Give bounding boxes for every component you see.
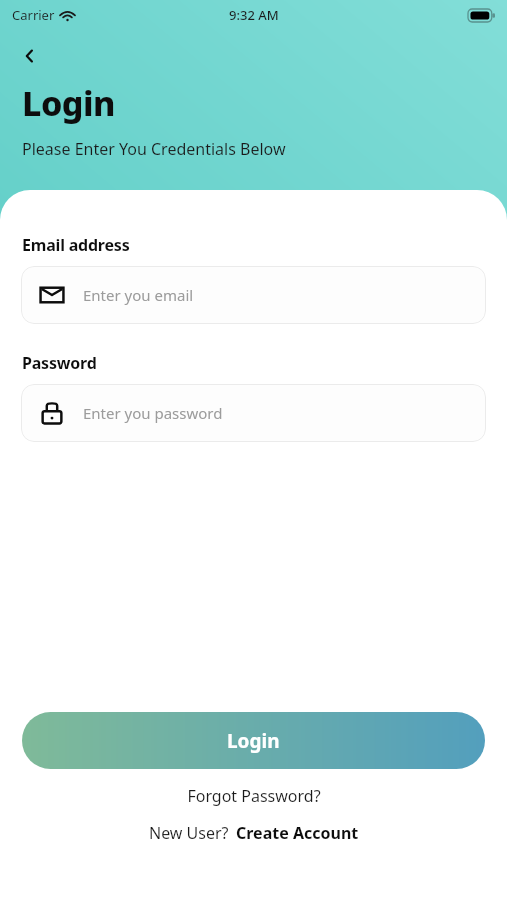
staticText: Please Enter You Credentials Below (22, 138, 286, 160)
button[interactable]: Forgot Password? (177, 781, 331, 811)
button[interactable]: Back (10, 36, 50, 76)
button[interactable]: Enter you password (21, 384, 486, 442)
staticText: Create Account (236, 822, 359, 844)
staticText: New User? (149, 822, 229, 844)
staticText: Login (22, 80, 115, 126)
staticText: Email address (22, 234, 130, 256)
staticText: Password (22, 352, 97, 374)
staticText: Carrier (12, 6, 55, 24)
staticText: 9:32 AM (229, 6, 279, 24)
staticText: Forgot Password? (187, 785, 321, 807)
button[interactable]: New User? (139, 818, 369, 848)
staticText: Enter you password (83, 403, 223, 423)
button[interactable]: Enter you email (21, 266, 486, 324)
staticText: Enter you email (83, 285, 194, 305)
staticText: Login (227, 728, 280, 754)
button[interactable]: Login (22, 712, 485, 769)
